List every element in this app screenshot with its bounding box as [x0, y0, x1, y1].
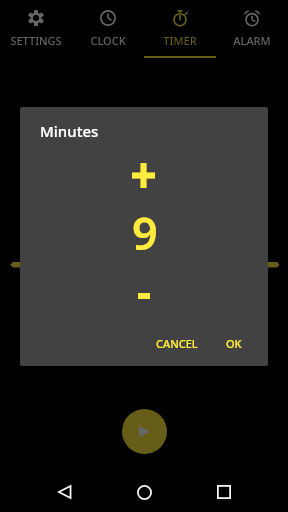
- button[interactable]: Home: [120, 468, 168, 512]
- button[interactable]: Start timer: [122, 409, 167, 454]
- button[interactable]: Decrease minutes: [120, 272, 168, 320]
- staticText: OK: [226, 336, 242, 351]
- staticText: SETTINGS: [10, 33, 62, 48]
- staticText: ALARM: [233, 33, 271, 48]
- button[interactable]: CANCEL: [144, 324, 210, 363]
- button[interactable]: ALARM: [216, 0, 288, 58]
- button[interactable]: Recent apps: [200, 468, 248, 512]
- button[interactable]: Increase minutes: [119, 151, 167, 199]
- button[interactable]: TIMER: [144, 0, 216, 58]
- staticText: CLOCK: [90, 33, 126, 48]
- button[interactable]: CLOCK: [72, 0, 144, 58]
- staticText: CANCEL: [156, 336, 198, 351]
- staticText: 9: [132, 202, 158, 263]
- staticText: TIMER: [163, 33, 197, 48]
- button[interactable]: OK: [214, 324, 254, 363]
- button[interactable]: SETTINGS: [0, 0, 72, 58]
- staticText: Minutes: [40, 121, 99, 141]
- button[interactable]: Back: [40, 468, 88, 512]
